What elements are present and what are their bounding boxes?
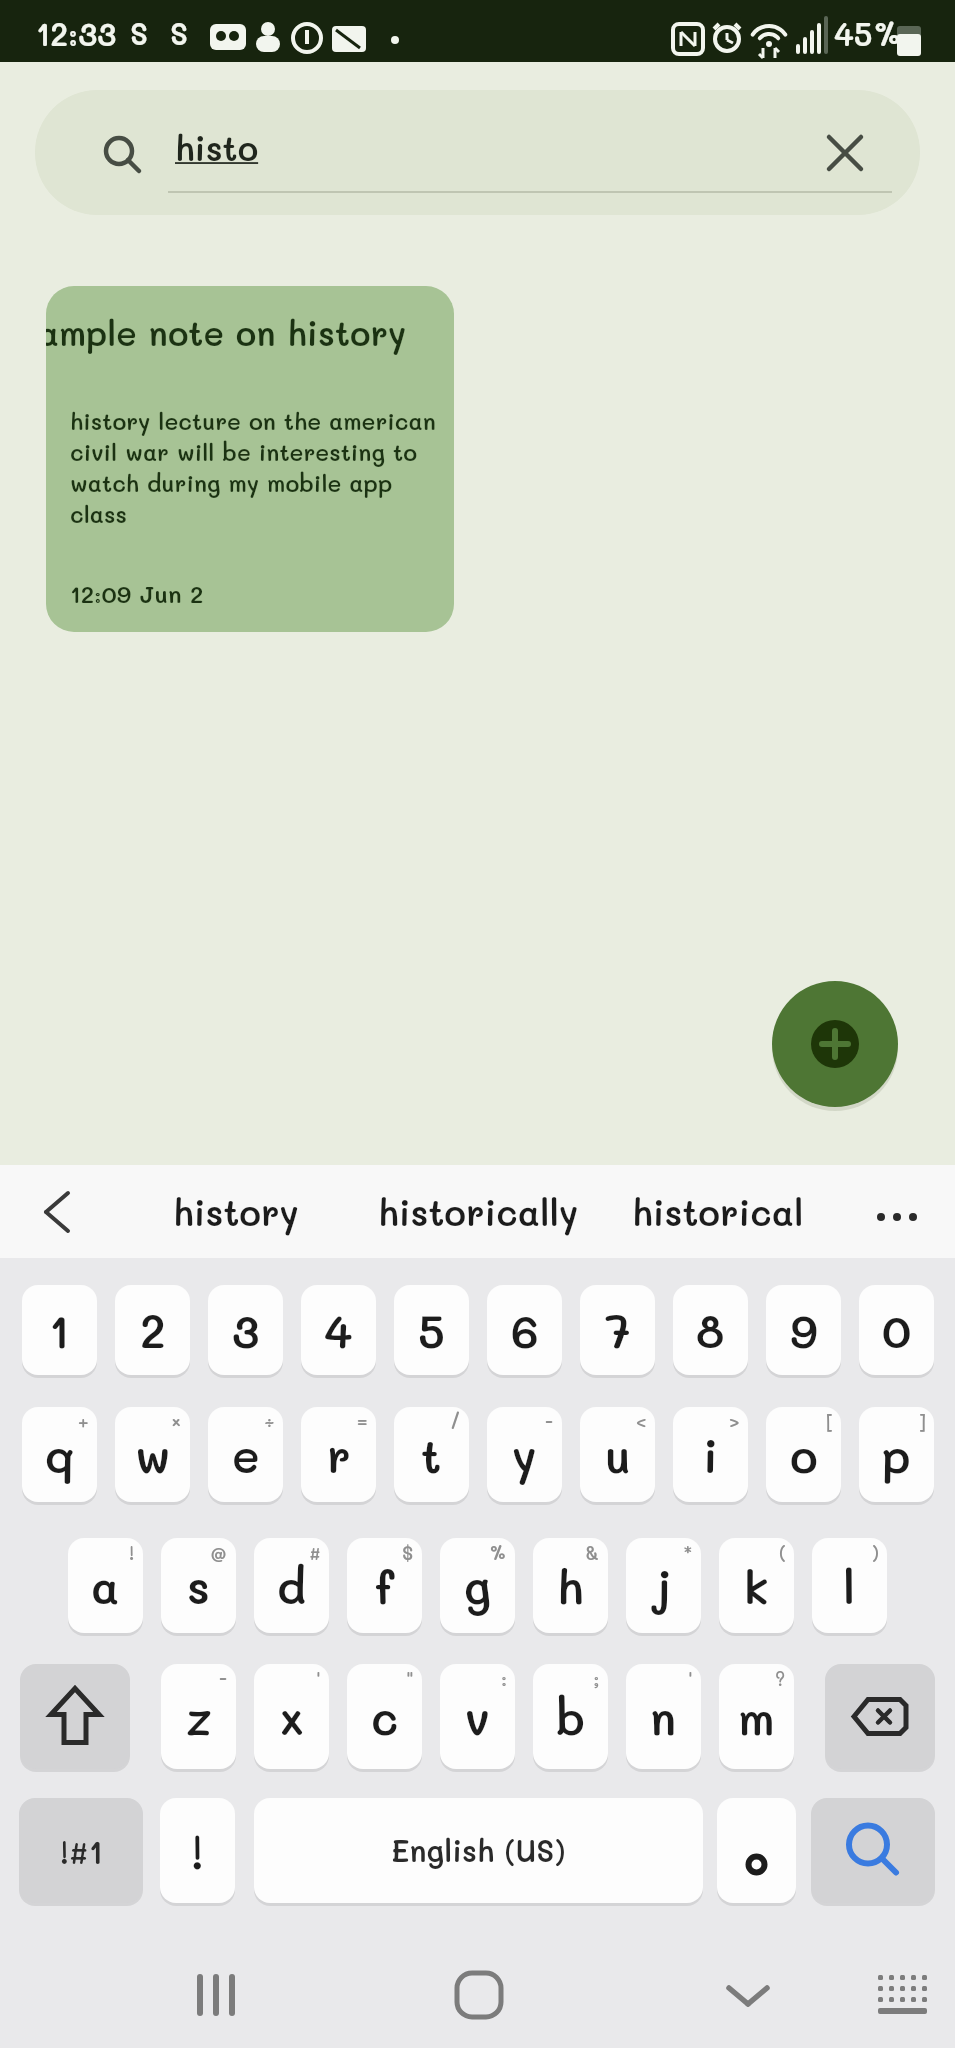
- button[interactable]: 2: [115, 1285, 190, 1375]
- staticText: ': [316, 1666, 321, 1691]
- staticText: s: [187, 1556, 210, 1616]
- staticText: 2: [140, 1300, 166, 1360]
- button[interactable]: historically: [370, 1165, 586, 1258]
- staticText: p: [882, 1425, 911, 1485]
- staticText: ): [872, 1540, 879, 1565]
- staticText: 4: [324, 1300, 353, 1360]
- button[interactable]: k: [719, 1538, 794, 1633]
- staticText: (: [779, 1540, 786, 1565]
- staticText: 12:09 Jun 2: [70, 578, 204, 609]
- button[interactable]: 5: [394, 1285, 469, 1375]
- button[interactable]: r: [301, 1407, 376, 1502]
- button[interactable]: c: [347, 1664, 422, 1769]
- button[interactable]: s: [161, 1538, 236, 1633]
- button[interactable]: b: [533, 1664, 608, 1769]
- staticText: S: [170, 14, 189, 53]
- staticText: ;: [593, 1666, 600, 1691]
- button[interactable]: d: [254, 1538, 329, 1633]
- button[interactable]: q: [22, 1407, 97, 1502]
- button[interactable]: h: [533, 1538, 608, 1633]
- button[interactable]: p: [859, 1407, 934, 1502]
- staticText: ample note on history: [46, 310, 407, 354]
- button[interactable]: i: [673, 1407, 748, 1502]
- staticText: c: [371, 1687, 399, 1747]
- staticText: 45%: [834, 12, 903, 54]
- staticText: l: [843, 1556, 856, 1616]
- button[interactable]: 9: [766, 1285, 841, 1375]
- staticText: $: [402, 1540, 414, 1565]
- button[interactable]: [811, 1798, 935, 1903]
- button[interactable]: f: [347, 1538, 422, 1633]
- button[interactable]: historical: [620, 1165, 816, 1258]
- staticText: !: [191, 1821, 204, 1881]
- button[interactable]: !: [160, 1798, 235, 1903]
- staticText: 0: [882, 1300, 912, 1360]
- staticText: a: [91, 1556, 120, 1616]
- button[interactable]: n: [626, 1664, 701, 1769]
- staticText: =: [357, 1409, 368, 1434]
- button[interactable]: w: [115, 1407, 190, 1502]
- button[interactable]: y: [487, 1407, 562, 1502]
- staticText: o: [790, 1425, 818, 1485]
- button[interactable]: m: [719, 1664, 794, 1769]
- button[interactable]: z: [161, 1664, 236, 1769]
- staticText: ×: [171, 1409, 182, 1434]
- staticText: ?: [775, 1666, 786, 1691]
- staticText: t: [421, 1425, 442, 1485]
- button[interactable]: history: [150, 1165, 322, 1258]
- staticText: !: [129, 1540, 135, 1565]
- button[interactable]: 0: [859, 1285, 934, 1375]
- button[interactable]: [698, 1958, 798, 2044]
- staticText: f: [375, 1556, 395, 1616]
- button[interactable]: 6: [487, 1285, 562, 1375]
- staticText: history lecture on the american civil wa…: [70, 406, 436, 529]
- staticText: v: [465, 1687, 490, 1747]
- staticText: q: [45, 1425, 75, 1485]
- button[interactable]: l: [812, 1538, 887, 1633]
- button[interactable]: j: [626, 1538, 701, 1633]
- button[interactable]: 7: [580, 1285, 655, 1375]
- staticText: ]: [919, 1409, 926, 1434]
- button[interactable]: v: [440, 1664, 515, 1769]
- button[interactable]: [20, 1664, 130, 1769]
- button[interactable]: 1: [22, 1285, 97, 1375]
- staticText: m: [738, 1687, 775, 1747]
- button[interactable]: [166, 1958, 266, 2044]
- staticText: 9: [790, 1300, 818, 1360]
- staticText: English (US): [391, 1831, 566, 1870]
- button[interactable]: [20, 1170, 100, 1253]
- staticText: z: [186, 1687, 212, 1747]
- staticText: h: [557, 1556, 584, 1616]
- button[interactable]: ample note on history: [46, 286, 454, 632]
- button[interactable]: [717, 1798, 796, 1903]
- staticText: u: [605, 1425, 631, 1485]
- button[interactable]: t: [394, 1407, 469, 1502]
- staticText: g: [464, 1556, 492, 1616]
- button[interactable]: x: [254, 1664, 329, 1769]
- button[interactable]: English (US): [254, 1798, 703, 1903]
- button[interactable]: 8: [673, 1285, 748, 1375]
- staticText: x: [280, 1687, 304, 1747]
- button[interactable]: u: [580, 1407, 655, 1502]
- staticText: @: [210, 1540, 228, 1565]
- button[interactable]: histo: [35, 90, 920, 215]
- button[interactable]: [855, 1958, 945, 2044]
- button[interactable]: [772, 981, 898, 1107]
- staticText: -: [545, 1409, 554, 1434]
- button[interactable]: [825, 1664, 935, 1769]
- staticText: b: [556, 1687, 586, 1747]
- staticText: y: [512, 1425, 537, 1485]
- staticText: 8: [696, 1300, 725, 1360]
- button[interactable]: g: [440, 1538, 515, 1633]
- button[interactable]: [857, 1170, 937, 1253]
- button[interactable]: [807, 115, 883, 191]
- button[interactable]: 3: [208, 1285, 283, 1375]
- button[interactable]: !#1: [19, 1798, 143, 1903]
- staticText: historically: [378, 1188, 579, 1235]
- button[interactable]: e: [208, 1407, 283, 1502]
- button[interactable]: 4: [301, 1285, 376, 1375]
- button[interactable]: a: [68, 1538, 143, 1633]
- staticText: :: [501, 1666, 507, 1691]
- button[interactable]: [429, 1958, 529, 2044]
- button[interactable]: o: [766, 1407, 841, 1502]
